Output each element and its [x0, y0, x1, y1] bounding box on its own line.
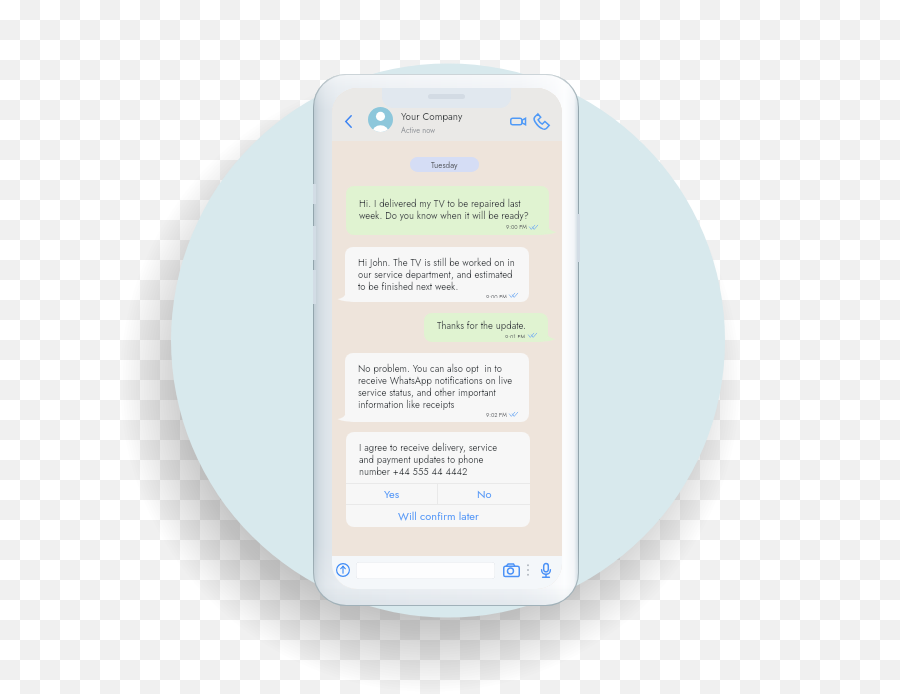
button[interactable]: Back — [337, 110, 359, 132]
button[interactable]: Send — [334, 561, 352, 579]
button[interactable]: No — [438, 484, 530, 504]
button[interactable]: Voice call — [530, 110, 552, 132]
button[interactable]: Camera — [501, 561, 521, 579]
button[interactable]: Tuesday — [410, 157, 479, 172]
staticText: Thanks for the update. — [437, 319, 526, 333]
staticText: Will confirm later — [398, 508, 479, 524]
staticText: 9:00 PM — [506, 223, 527, 231]
button[interactable]: Message field — [356, 562, 495, 579]
button[interactable]: More options — [523, 561, 533, 579]
staticText: No — [477, 486, 492, 502]
button[interactable]: Yes — [346, 484, 437, 504]
staticText: 9:01 PM — [505, 333, 526, 338]
button[interactable]: Hi John. The TV is still be worked on in… — [345, 247, 529, 302]
button[interactable]: Will confirm later — [346, 505, 530, 527]
staticText: Hi John. The TV is still be worked on in… — [358, 256, 518, 293]
staticText: 9:00 PM — [486, 293, 507, 298]
staticText: Tuesday — [431, 159, 458, 171]
staticText: 9:02 PM — [486, 411, 507, 418]
button[interactable]: Video call — [507, 110, 529, 132]
staticText: Hi. I delivered my TV to be repaired las… — [359, 197, 538, 222]
button[interactable]: Hi. I delivered my TV to be repaired las… — [346, 186, 549, 235]
button[interactable]: Thanks for the update. — [424, 313, 548, 342]
staticText: Your Company — [401, 109, 463, 123]
staticText: No problem. You can also opt in to recei… — [358, 362, 518, 411]
staticText: Yes — [384, 486, 400, 502]
button[interactable]: Voice message — [538, 561, 554, 579]
staticText: Active now — [401, 125, 436, 136]
button[interactable]: No problem. You can also opt in to recei… — [345, 353, 529, 422]
staticText: I agree to receive delivery, service and… — [359, 441, 503, 478]
